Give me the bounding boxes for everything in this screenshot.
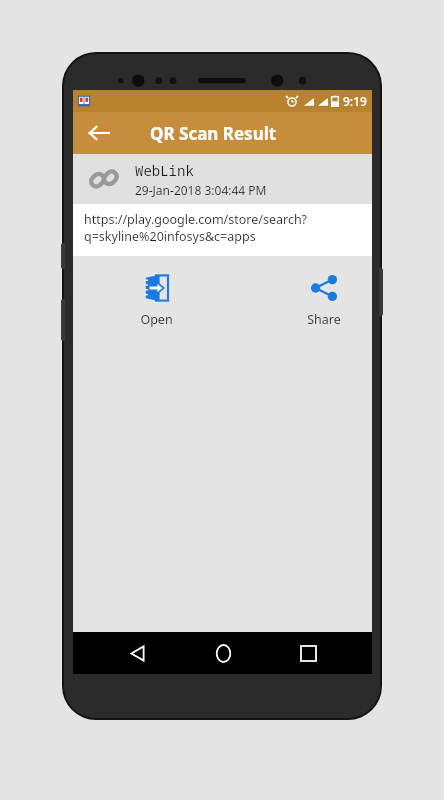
button[interactable]: Share [287,267,361,332]
button[interactable]: Back [79,113,119,153]
staticText: Share [307,311,341,328]
staticText: QR Scan Result [150,122,277,145]
staticText: WebLink [135,161,194,180]
staticText: 9:19 [343,93,367,109]
button[interactable]: https://play.google.com/store/search?q=s… [73,204,372,256]
staticText: https://play.google.com/store/search?q=s… [84,211,361,244]
staticText: 29-Jan-2018 3:04:44 PM [135,182,267,198]
button[interactable]: Recents [286,632,330,674]
button[interactable]: Back [115,632,159,674]
button[interactable]: Home [201,632,245,674]
button[interactable]: Open [119,267,193,332]
button[interactable]: WebLink [73,154,372,204]
staticText: Open [140,311,173,328]
